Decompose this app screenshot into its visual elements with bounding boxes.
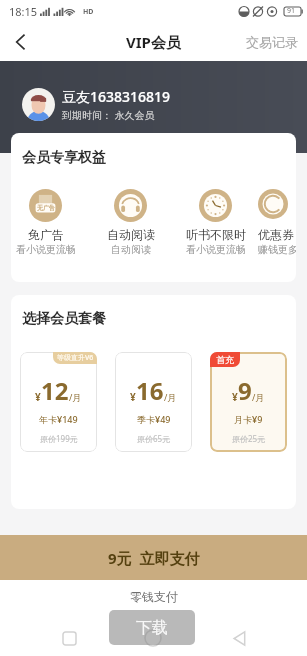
staticText: 免广告 (28, 227, 64, 242)
staticText: 9元 立即支付 (108, 548, 200, 568)
staticText: 到期时间： 永久会员 (62, 108, 155, 122)
staticText: HD (83, 7, 94, 17)
staticText: 原价25元 (232, 433, 266, 444)
staticText: 月卡¥9 (234, 413, 263, 425)
staticText: 听书不限时 (186, 227, 246, 242)
staticText: 16 (136, 374, 164, 407)
staticText: 看小说更流畅 (16, 243, 76, 256)
staticText: 年卡¥149 (39, 413, 78, 425)
button[interactable]: 交易记录 (244, 28, 300, 56)
button[interactable]: 无广告 (11, 189, 88, 256)
staticText: 选择会员套餐 (22, 310, 106, 328)
staticText: ¥ (130, 390, 136, 404)
staticText: 12 (41, 374, 69, 407)
staticText: ¥ (35, 390, 41, 404)
staticText: 会员专享权益 (22, 149, 106, 167)
staticText: 赚钱更多 (258, 243, 288, 256)
staticText: 首充 (216, 354, 234, 365)
staticText: 零钱支付 (130, 589, 178, 604)
staticText: 看小说更流畅 (186, 243, 246, 256)
staticText: /月 (164, 391, 177, 403)
staticText: 原价199元 (40, 433, 78, 444)
staticText: 自动阅读 (107, 227, 155, 242)
button[interactable]: Home (133, 618, 173, 656)
staticText: 91 (287, 6, 296, 16)
button[interactable]: ¥ (115, 352, 192, 452)
staticText: /月 (252, 391, 265, 403)
staticText: 下载 (136, 618, 168, 638)
button[interactable]: 9元 立即支付 (0, 535, 307, 580)
staticText: ¥ (232, 390, 238, 404)
staticText: 无广告 (37, 204, 55, 212)
button[interactable]: 听书不限时 (173, 189, 258, 256)
button[interactable]: 下载 (109, 610, 195, 645)
button[interactable]: Recents (49, 618, 89, 656)
staticText: 优惠券 (258, 227, 288, 242)
button[interactable]: 优惠券 (258, 189, 288, 256)
staticText: 18:15 (9, 4, 38, 19)
staticText: 季卡¥49 (137, 413, 171, 425)
staticText: 自动阅读 (111, 243, 151, 256)
button[interactable]: 自动阅读 (88, 189, 173, 256)
staticText: 原价65元 (137, 433, 171, 444)
staticText: 交易记录 (246, 34, 298, 50)
staticText: /月 (69, 391, 82, 403)
button[interactable]: ¥ (210, 352, 287, 452)
staticText: 豆友1638316819 (62, 87, 171, 106)
button[interactable]: Back (0, 22, 40, 61)
button[interactable]: Back (219, 618, 259, 656)
button[interactable]: ¥ (20, 352, 97, 452)
staticText: 等级直升V6 (57, 353, 94, 363)
staticText: 9 (238, 374, 252, 407)
staticText: VIP会员 (126, 32, 181, 52)
